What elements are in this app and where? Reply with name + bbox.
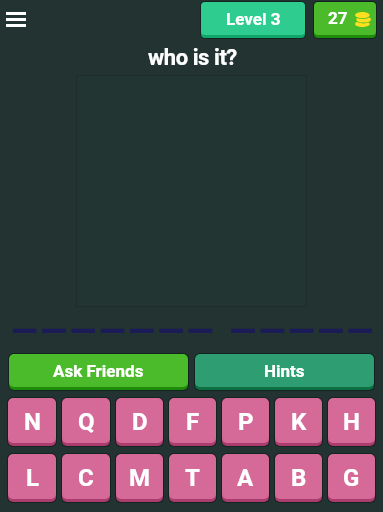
staticText: M [129,464,151,492]
button[interactable]: G [327,453,376,503]
staticText: F [186,408,200,436]
button[interactable]: F [168,397,217,447]
staticText: who is it? [148,45,237,71]
staticText: Q [78,408,95,436]
staticText: H [343,408,360,436]
button[interactable]: 27 [313,1,377,39]
staticText: P [238,408,254,436]
staticText: C [78,464,94,492]
staticText: B [291,464,307,492]
staticText: D [132,408,148,436]
staticText: K [291,408,307,436]
button[interactable]: Menu [0,4,31,34]
button[interactable]: Ask Friends [8,353,189,391]
button[interactable]: B [274,453,323,503]
staticText: Hints [264,361,305,381]
button[interactable]: P [221,397,270,447]
staticText: T [185,464,200,492]
button[interactable]: T [168,453,217,503]
button[interactable]: H [327,397,376,447]
staticText: Ask Friends [53,361,144,381]
staticText: N [24,408,41,436]
staticText: 27 [328,8,348,28]
button[interactable]: Hints [194,353,375,391]
button[interactable]: Level 3 [200,1,306,39]
button[interactable]: C [61,453,111,503]
staticText: Level 3 [226,9,281,29]
staticText: L [26,464,39,492]
button[interactable]: N [7,397,57,447]
button[interactable]: L [7,453,57,503]
staticText: A [237,464,254,492]
staticText: G [343,464,360,492]
button[interactable]: D [115,397,164,447]
button[interactable]: M [115,453,164,503]
button[interactable]: K [274,397,323,447]
button[interactable]: Q [61,397,111,447]
button[interactable]: A [221,453,270,503]
